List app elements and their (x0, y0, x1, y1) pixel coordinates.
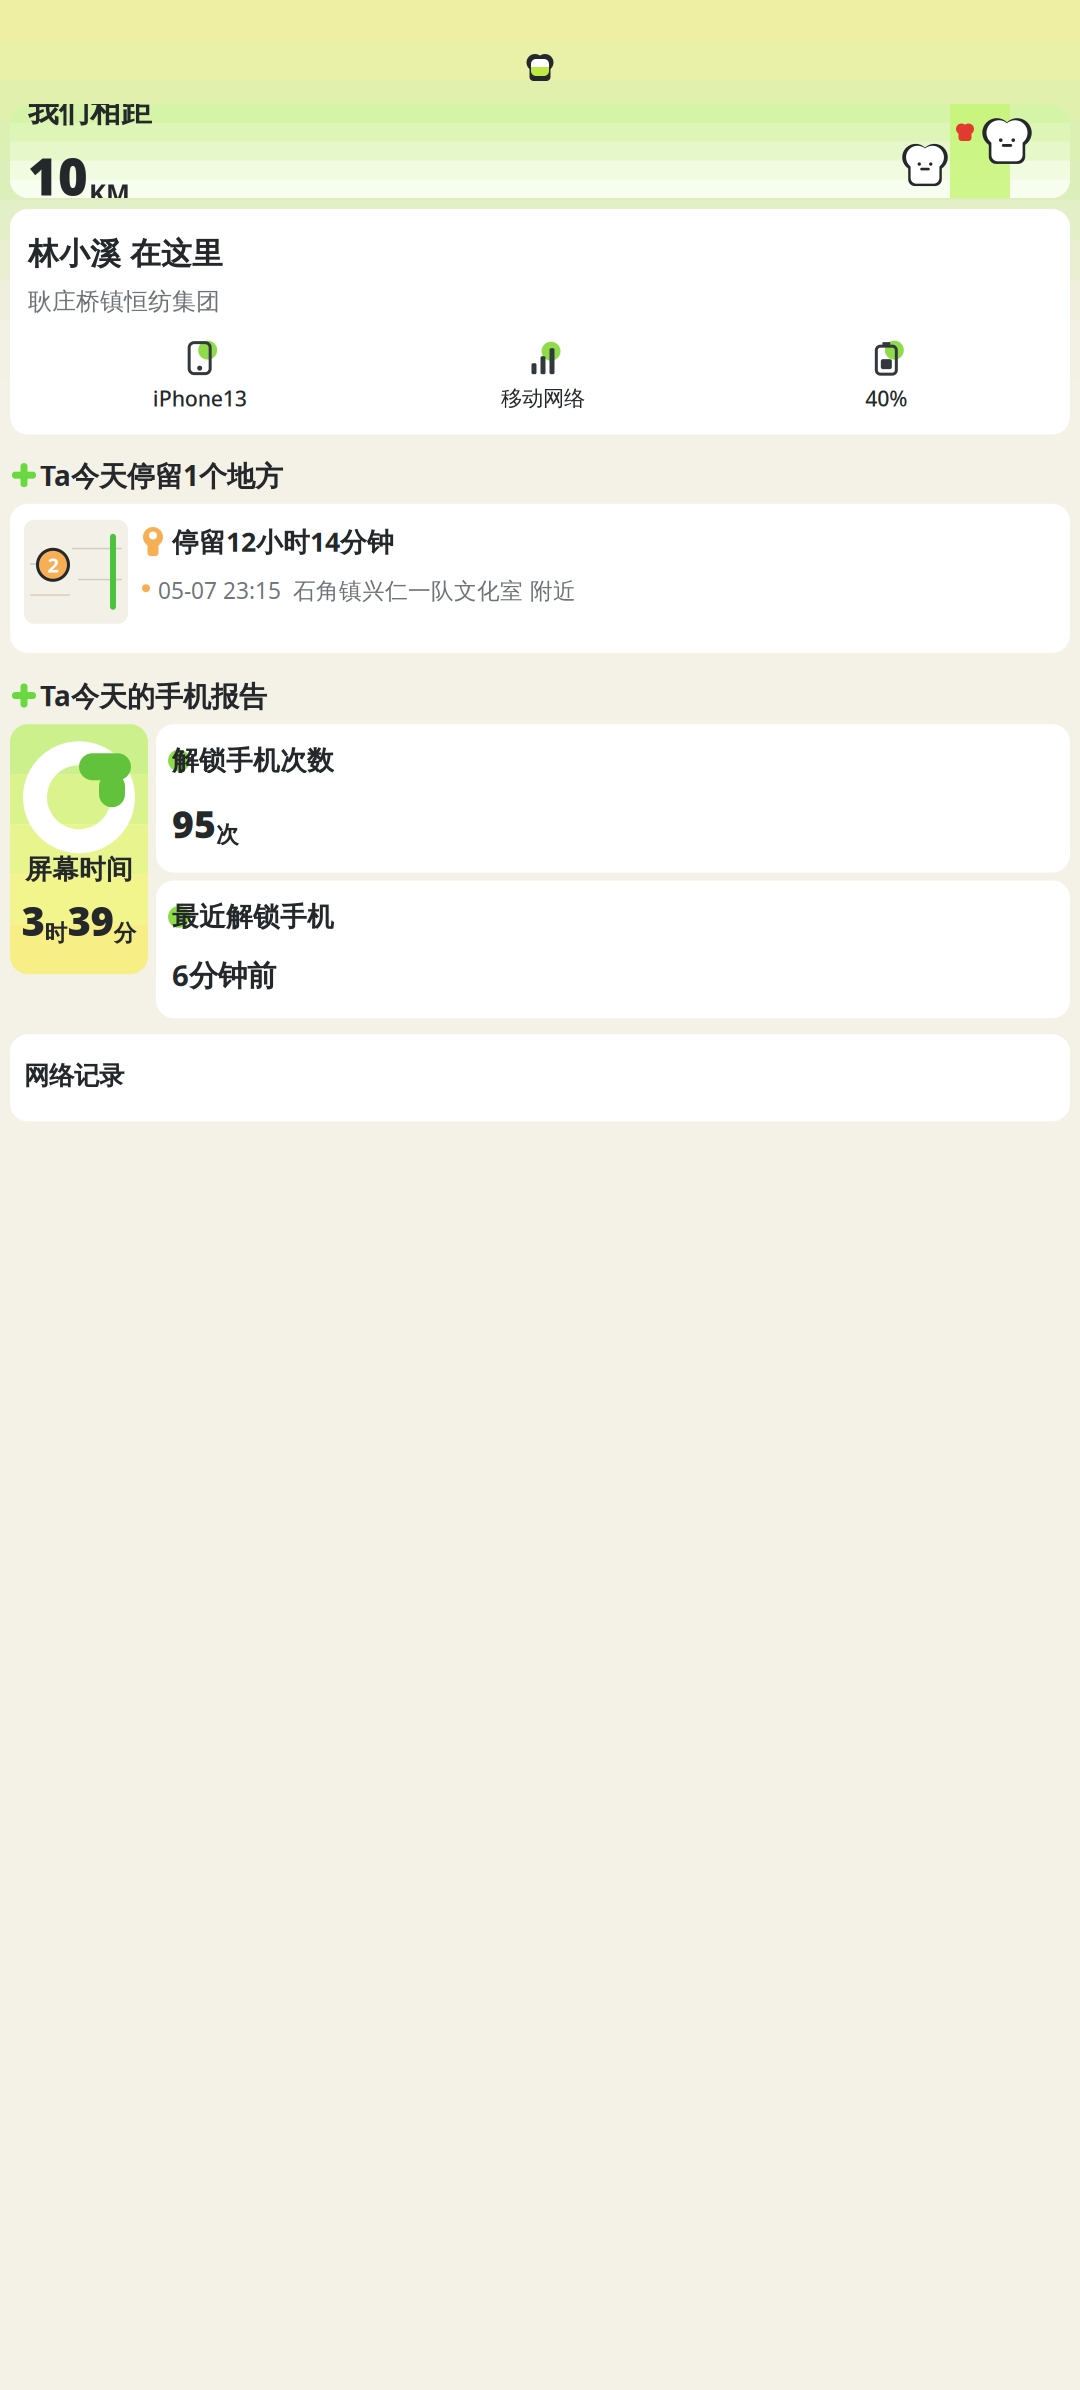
staticText: 解锁手机次数 (172, 744, 334, 777)
staticText: 3 (21, 894, 44, 947)
staticText: 耿庄桥镇恒纺集团 (28, 287, 220, 316)
staticText: 时 (44, 919, 67, 947)
button[interactable]: 屏幕时间 (10, 724, 148, 974)
staticText: Ta今天停留1个地方 (40, 456, 283, 494)
staticText: 屏幕时间 (25, 853, 133, 886)
staticText: 最近解锁手机 (172, 900, 334, 933)
staticText: 95 (172, 799, 216, 848)
staticText: KM (89, 176, 130, 209)
button[interactable]: 最近解锁手机 (156, 880, 1070, 1018)
staticText: 我们相距 (28, 92, 152, 130)
staticText: 6分钟前 (172, 955, 276, 994)
button[interactable]: 网络记录 (10, 1034, 1070, 1121)
staticText: 林小溪 在这里 (28, 235, 223, 273)
staticText: 39 (67, 894, 113, 947)
button[interactable]: 林小溪 在这里 (10, 209, 1070, 434)
staticText: 次 (216, 821, 239, 848)
staticText: 40% (865, 384, 907, 412)
staticText: 05-07 23:15 石角镇兴仁一队文化室 附近 (158, 575, 576, 605)
button[interactable]: 解锁手机次数 (156, 724, 1070, 872)
staticText: 分 (113, 919, 136, 947)
button[interactable]: 我们相距 (10, 104, 1070, 198)
staticText: 2 (47, 551, 58, 578)
staticText: 停留12小时14分钟 (172, 524, 394, 559)
button[interactable]: 2 (10, 504, 1070, 653)
staticText: 移动网络 (501, 385, 585, 411)
staticText: Ta今天的手机报告 (40, 677, 267, 714)
staticText: 10 (28, 142, 88, 209)
staticText: 网络记录 (24, 1060, 124, 1091)
staticText: iPhone13 (153, 384, 247, 412)
